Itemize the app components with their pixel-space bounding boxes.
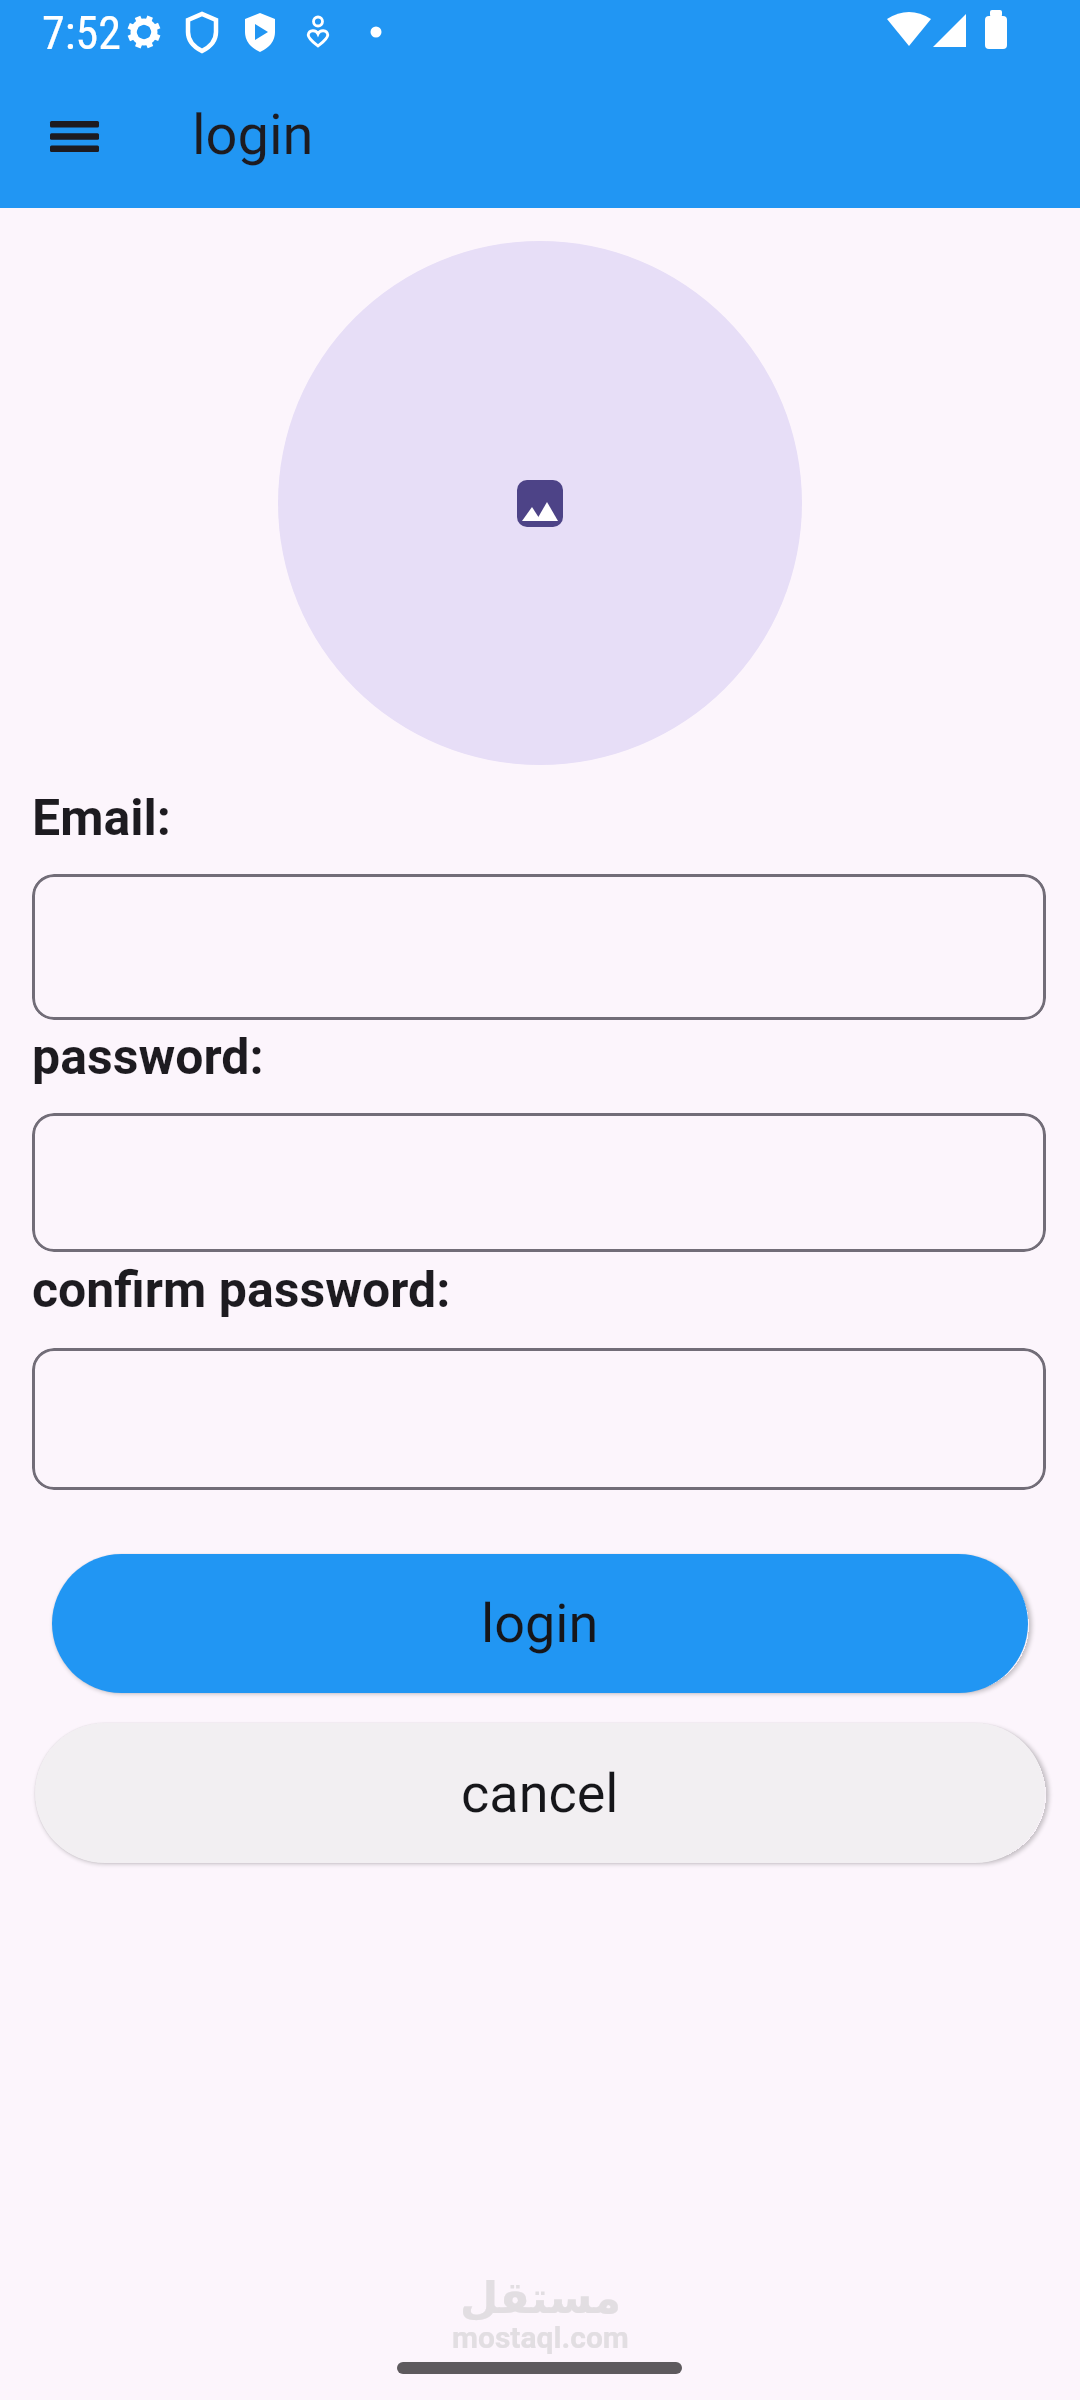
staticText: confirm password: <box>32 1261 451 1320</box>
staticText: login <box>192 102 314 168</box>
staticText: mostaql.com <box>452 2320 629 2355</box>
staticText: 7:52 <box>42 6 121 60</box>
button[interactable] <box>278 241 802 765</box>
button[interactable]: login <box>52 1554 1028 1693</box>
staticText: cancel <box>461 1762 619 1825</box>
button[interactable] <box>32 874 1046 1020</box>
staticText: Email: <box>32 789 171 848</box>
button[interactable]: cancel <box>35 1723 1045 1863</box>
staticText: password: <box>32 1028 264 1087</box>
button[interactable] <box>32 1113 1046 1252</box>
button[interactable] <box>30 100 118 172</box>
button[interactable] <box>32 1348 1046 1490</box>
staticText: login <box>481 1592 599 1655</box>
staticText: مستقل <box>460 2272 621 2323</box>
